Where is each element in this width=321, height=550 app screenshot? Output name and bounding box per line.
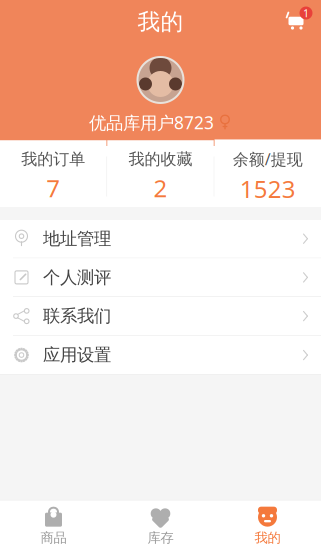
staticText: 地址管理 bbox=[43, 228, 111, 249]
button[interactable]: 商品 bbox=[0, 501, 107, 550]
staticText: 个人测评 bbox=[43, 267, 111, 288]
button[interactable]: 购物车 bbox=[275, 5, 315, 39]
staticText: 7 bbox=[46, 172, 60, 204]
staticText: 2 bbox=[153, 172, 167, 204]
staticText: 1 bbox=[303, 6, 309, 20]
staticText: 我的订单 bbox=[21, 149, 85, 169]
button[interactable]: 地址管理 bbox=[0, 220, 321, 258]
staticText: 商品 bbox=[40, 530, 66, 546]
button[interactable]: 应用设置 bbox=[0, 336, 321, 374]
staticText: 余额/提现 bbox=[233, 148, 303, 170]
button[interactable]: 联系我们 bbox=[0, 297, 321, 336]
button[interactable]: 余额/提现 bbox=[214, 139, 321, 213]
staticText: 优品库用户8723 bbox=[89, 111, 214, 134]
button[interactable]: 我的 bbox=[214, 501, 321, 550]
staticText: 我的 bbox=[254, 530, 280, 546]
button[interactable]: 我的订单 bbox=[0, 140, 106, 213]
staticText: 我的 bbox=[137, 8, 183, 36]
staticText: 联系我们 bbox=[43, 305, 111, 327]
staticText: 库存 bbox=[147, 530, 173, 546]
button[interactable]: 库存 bbox=[107, 501, 214, 550]
staticText: 我的收藏 bbox=[128, 149, 192, 169]
button[interactable]: 头像 bbox=[137, 57, 183, 103]
staticText: 应用设置 bbox=[43, 344, 111, 366]
staticText: 1523 bbox=[240, 173, 296, 205]
button[interactable]: 个人测评 bbox=[0, 258, 321, 297]
button[interactable]: 我的收藏 bbox=[107, 140, 214, 213]
